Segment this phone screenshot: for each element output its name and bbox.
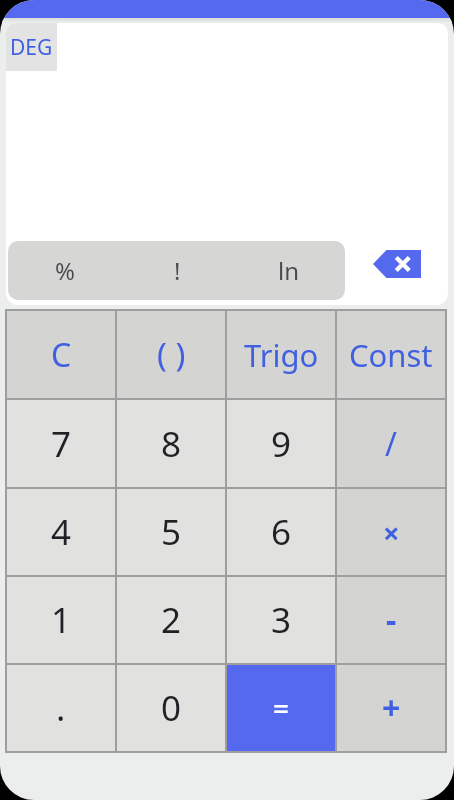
button[interactable]: 7 [7, 400, 115, 487]
staticText: ! [174, 254, 181, 287]
staticText: / [385, 422, 397, 466]
button[interactable]: ! [121, 241, 233, 300]
button[interactable]: = [227, 665, 335, 751]
staticText: % [55, 254, 75, 287]
button[interactable]: + [337, 665, 445, 751]
staticText: Trigo [244, 334, 319, 376]
button[interactable]: DEG [6, 23, 57, 71]
button[interactable]: × [337, 489, 445, 575]
staticText: 2 [161, 596, 182, 644]
button[interactable]: 2 [117, 577, 225, 663]
staticText: - [386, 598, 397, 642]
staticText: 8 [161, 420, 182, 468]
staticText: = [273, 689, 290, 727]
button[interactable]: . [7, 665, 115, 751]
staticText: 1 [51, 596, 72, 644]
button[interactable]: 4 [7, 489, 115, 575]
button[interactable]: Trigo [227, 311, 335, 398]
button[interactable]: 3 [227, 577, 335, 663]
button[interactable] [364, 242, 430, 286]
staticText: 3 [271, 596, 292, 644]
staticText: 9 [271, 420, 292, 468]
button[interactable]: ( ) [117, 311, 225, 398]
button[interactable]: 1 [7, 577, 115, 663]
button[interactable]: % [8, 241, 121, 300]
button[interactable]: 5 [117, 489, 225, 575]
button[interactable]: C [7, 311, 115, 398]
button[interactable]: 0 [117, 665, 225, 751]
button[interactable]: - [337, 577, 445, 663]
staticText: Const [349, 334, 433, 376]
button[interactable]: 6 [227, 489, 335, 575]
staticText: ( ) [157, 332, 186, 377]
staticText: ln [278, 254, 300, 287]
staticText: 7 [51, 420, 72, 468]
staticText: + [382, 686, 401, 730]
button[interactable]: 9 [227, 400, 335, 487]
staticText: 6 [271, 508, 292, 556]
staticText: C [51, 333, 72, 377]
staticText: 0 [161, 684, 182, 732]
button[interactable]: ln [233, 241, 345, 300]
staticText: DEG [10, 33, 53, 62]
staticText: 4 [51, 508, 72, 556]
staticText: 5 [161, 508, 182, 556]
staticText: . [56, 684, 66, 732]
staticText: × [383, 513, 400, 552]
button[interactable]: 8 [117, 400, 225, 487]
button[interactable]: / [337, 400, 445, 487]
button[interactable]: Const [337, 311, 445, 398]
